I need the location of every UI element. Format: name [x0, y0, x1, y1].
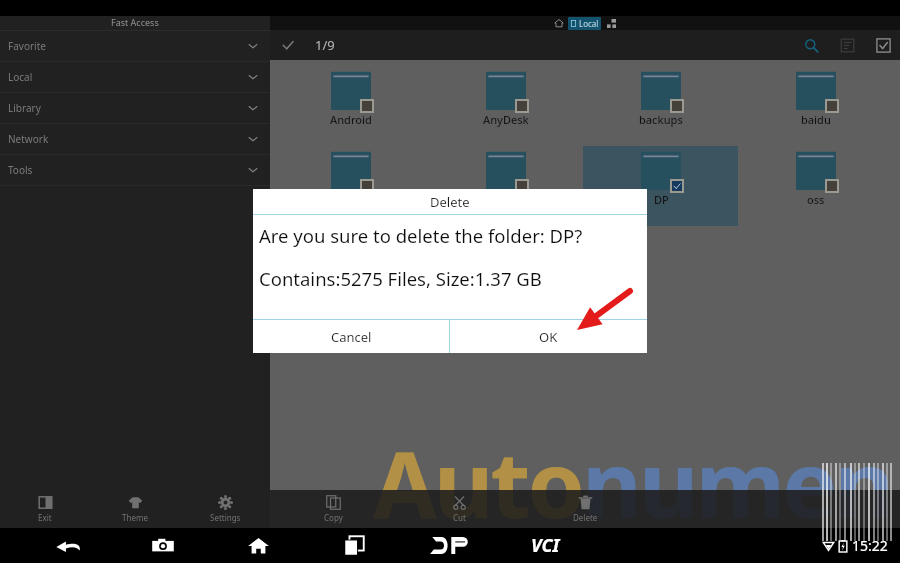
staticText: oss — [807, 192, 825, 207]
button[interactable]: backups — [583, 66, 738, 146]
button[interactable]: Android — [273, 66, 428, 146]
staticText: Favorite — [8, 39, 46, 53]
staticText: Fast Access — [111, 16, 159, 28]
staticText: Theme — [122, 512, 148, 523]
button[interactable]: Library — [0, 93, 270, 124]
staticText: Cancel — [331, 328, 372, 346]
staticText: OK — [539, 328, 558, 346]
staticText: Android — [330, 112, 372, 127]
button[interactable]: baidu — [738, 66, 893, 146]
button[interactable]: Done — [273, 30, 303, 60]
staticText: Auto — [373, 420, 582, 545]
button[interactable]: OK — [450, 320, 647, 353]
staticText: numen — [582, 420, 892, 545]
button[interactable]: Home — [234, 528, 282, 563]
button[interactable]: Favorite — [0, 31, 270, 62]
staticText: Are you sure to delete the folder: DP? — [259, 223, 583, 248]
button[interactable] — [428, 146, 583, 226]
button[interactable]: Local — [0, 62, 270, 93]
button[interactable]: Local — [570, 18, 599, 29]
staticText: Copy — [324, 512, 343, 523]
staticText: AnyDesk — [483, 112, 529, 127]
staticText: Contains:5275 Files, Size:1.37 GB — [259, 266, 542, 291]
button[interactable]: Theme — [90, 490, 180, 528]
staticText: 1/9 — [315, 36, 335, 54]
button[interactable]: Search — [796, 30, 826, 60]
button[interactable]: DP — [583, 146, 738, 226]
staticText: Cut — [453, 512, 466, 523]
button[interactable]: Delete — [522, 490, 648, 528]
staticText: VCI — [531, 533, 560, 558]
staticText: Local — [8, 70, 33, 84]
button[interactable]: Sort — [832, 30, 862, 60]
staticText: Network — [8, 132, 49, 146]
staticText: Local — [579, 18, 599, 29]
button[interactable]: Select all — [868, 30, 898, 60]
button[interactable]: oss — [738, 146, 893, 226]
button[interactable] — [273, 146, 428, 226]
staticText: Library — [8, 101, 41, 115]
button[interactable]: Home — [552, 16, 566, 30]
staticText: Delete — [573, 512, 598, 523]
button[interactable]: DP — [425, 528, 473, 563]
button[interactable]: Recents — [330, 528, 378, 563]
button[interactable]: AnyDesk — [428, 66, 583, 146]
button[interactable]: VCI — [521, 528, 569, 563]
staticText: baidu — [801, 112, 831, 127]
button[interactable]: Cancel — [253, 320, 449, 353]
staticText: DP — [654, 192, 669, 207]
button[interactable]: Network — [0, 124, 270, 155]
button[interactable]: Back — [44, 528, 92, 563]
staticText: Tools — [8, 163, 33, 177]
staticText: 15:22 — [852, 536, 888, 555]
button[interactable]: Tools — [0, 155, 270, 186]
button[interactable]: Network — [604, 16, 618, 30]
button[interactable]: Copy — [270, 490, 396, 528]
staticText: Settings — [210, 512, 241, 523]
staticText: backups — [639, 112, 683, 127]
staticText: Auto — [373, 420, 582, 545]
button[interactable]: Screenshot — [139, 528, 187, 563]
button[interactable]: Cut — [396, 490, 522, 528]
staticText: Delete — [430, 193, 470, 211]
staticText: numen — [582, 420, 892, 545]
button[interactable]: Settings — [180, 490, 270, 528]
staticText: Exit — [38, 512, 52, 523]
button[interactable]: Exit — [0, 490, 90, 528]
